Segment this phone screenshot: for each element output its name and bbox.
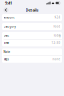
staticText: Details — [25, 7, 38, 13]
staticText: 12:30 — [51, 41, 60, 45]
staticText: Amount — [4, 16, 15, 19]
staticText: 9:41 — [5, 0, 12, 6]
staticText: Note — [4, 50, 11, 54]
staticText: Date — [4, 34, 10, 37]
staticText: none — [52, 57, 60, 61]
staticText: Category — [4, 25, 16, 28]
staticText: $24 — [54, 16, 60, 19]
button[interactable]: Back — [2, 6, 10, 14]
staticText: Today — [53, 34, 60, 37]
staticText: Tags — [4, 57, 9, 61]
staticText: Food — [53, 25, 60, 28]
staticText: Time — [4, 41, 10, 45]
